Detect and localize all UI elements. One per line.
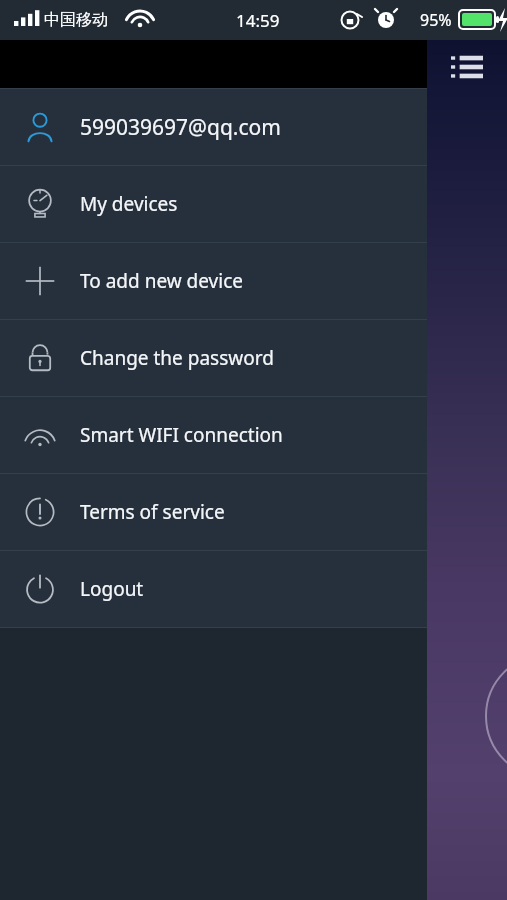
staticText: 中国移动 — [44, 10, 108, 30]
staticText: To add new device — [80, 268, 244, 294]
staticText: 14:59 — [236, 9, 280, 32]
button[interactable]: 599039697@qq.com — [0, 89, 427, 165]
button[interactable]: My devices — [0, 166, 427, 242]
button[interactable]: To add new device — [0, 243, 427, 319]
staticText: Logout — [80, 576, 144, 602]
staticText: Smart WIFI connection — [80, 422, 283, 448]
staticText: Change the password — [80, 345, 274, 371]
staticText: My devices — [80, 191, 178, 217]
staticText: Terms of service — [80, 499, 225, 525]
button[interactable]: Terms of service — [0, 474, 427, 550]
button[interactable]: Change the password — [0, 320, 427, 396]
button[interactable]: Logout — [0, 551, 427, 627]
button[interactable]: Menu — [442, 42, 492, 92]
button[interactable]: Smart WIFI connection — [0, 397, 427, 473]
staticText: 95% — [420, 9, 452, 31]
staticText: 599039697@qq.com — [80, 113, 281, 142]
